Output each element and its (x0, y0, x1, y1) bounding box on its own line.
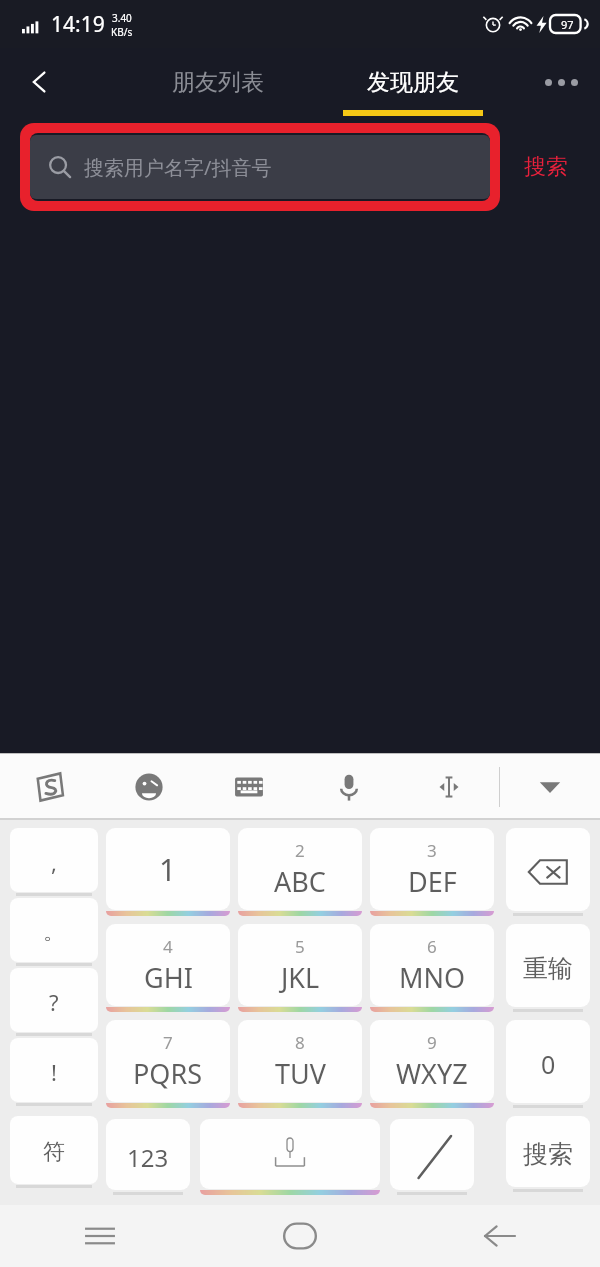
button[interactable]: Back (14, 56, 66, 108)
staticText: 1 (159, 849, 177, 890)
button[interactable]: ! (10, 1038, 98, 1106)
staticText: 0 (541, 1047, 556, 1081)
staticText: 朋友列表 (172, 68, 264, 97)
button[interactable]: Sogou input (0, 753, 99, 820)
staticText: TUV (275, 1055, 326, 1092)
staticText: 5 (295, 935, 305, 958)
button[interactable]: 7 (106, 1020, 230, 1108)
staticText: PQRS (133, 1055, 203, 1092)
button[interactable]: 9 (370, 1020, 494, 1108)
button[interactable]: , (10, 828, 98, 896)
button[interactable]: Home (200, 1205, 400, 1267)
button[interactable]: More options (534, 55, 588, 109)
button[interactable]: 搜索 (506, 1116, 590, 1192)
button[interactable]: Recent apps (0, 1205, 200, 1267)
staticText: 9 (427, 1031, 437, 1054)
staticText: 14:19 (51, 10, 105, 39)
button[interactable]: Keyboard layout (199, 753, 299, 820)
staticText: 97 (561, 17, 574, 32)
button[interactable]: Space, voice input (200, 1119, 380, 1195)
button[interactable]: 123 (106, 1119, 190, 1195)
button[interactable]: 搜索 (502, 135, 590, 199)
staticText: GHI (144, 959, 193, 996)
button[interactable]: 8 (238, 1020, 362, 1108)
button[interactable]: ? (10, 968, 98, 1036)
button[interactable]: 。 (10, 898, 98, 966)
button[interactable]: Hide keyboard (500, 753, 600, 820)
button[interactable]: 0 (506, 1020, 590, 1108)
button[interactable]: Back (400, 1205, 600, 1267)
staticText: 搜索 (524, 153, 568, 181)
button[interactable]: 3 (370, 828, 494, 916)
button[interactable]: 搜索用户名字/抖音号 (30, 135, 490, 199)
staticText: MNO (399, 959, 466, 996)
button[interactable]: Switch Chinese English (390, 1119, 474, 1195)
staticText: 重输 (523, 953, 573, 984)
button[interactable]: 6 (370, 924, 494, 1012)
staticText: 6 (427, 935, 437, 958)
staticText: JKL (281, 959, 320, 996)
button[interactable]: 发现朋友 (343, 48, 483, 116)
staticText: 搜索用户名字/抖音号 (84, 154, 272, 181)
staticText: 4 (163, 935, 173, 958)
button[interactable]: Move cursor (399, 753, 499, 820)
staticText: 7 (163, 1031, 173, 1054)
button[interactable]: 重输 (506, 924, 590, 1012)
staticText: 8 (295, 1031, 305, 1054)
staticText: 3.40 (112, 11, 132, 25)
staticText: DEF (408, 863, 457, 900)
staticText: ABC (274, 863, 326, 900)
staticText: 发现朋友 (367, 68, 459, 97)
button[interactable]: Backspace (506, 828, 590, 916)
staticText: 。 (43, 918, 65, 946)
button[interactable]: 2 (238, 828, 362, 916)
button[interactable]: 朋友列表 (148, 48, 288, 116)
button[interactable]: 5 (238, 924, 362, 1012)
staticText: WXYZ (396, 1055, 468, 1092)
staticText: 123 (127, 1141, 169, 1174)
button[interactable]: 4 (106, 924, 230, 1012)
button[interactable]: 1 (106, 828, 230, 916)
staticText: 搜索 (523, 1139, 573, 1170)
staticText: 2 (295, 839, 305, 862)
staticText: 符 (43, 1138, 65, 1166)
staticText: , (51, 847, 57, 877)
staticText: ? (49, 987, 59, 1017)
button[interactable]: Emoji (99, 753, 199, 820)
staticText: ! (51, 1057, 57, 1087)
button[interactable]: 符 (10, 1116, 98, 1188)
staticText: KB/s (111, 25, 133, 39)
button[interactable]: Voice input (299, 753, 399, 820)
staticText: 3 (427, 839, 437, 862)
